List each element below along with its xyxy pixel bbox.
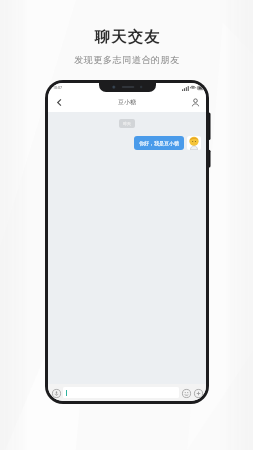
button[interactable]: Voice input (51, 388, 61, 398)
staticText: 发现更多志同道合的朋友 (74, 54, 180, 65)
button[interactable] (63, 387, 179, 398)
staticText: 豆小糖 (118, 98, 136, 106)
staticText: 聊天交友 (94, 28, 160, 47)
button[interactable]: Emoji (181, 388, 191, 398)
button[interactable]: 你好，我是豆小糖 (134, 136, 184, 150)
button[interactable]: More options (193, 388, 203, 398)
button[interactable]: Avatar (187, 136, 201, 150)
button[interactable]: Back (51, 94, 67, 110)
staticText: 10:07 (53, 85, 62, 90)
button[interactable]: Profile (187, 94, 203, 110)
staticText: 你好，我是豆小糖 (139, 140, 179, 146)
staticText: 昨天 (123, 121, 131, 126)
